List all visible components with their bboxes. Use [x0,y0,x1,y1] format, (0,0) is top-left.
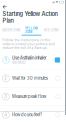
button[interactable]: GREEN ZONE [1,28,21,34]
staticText: 3 [4,94,7,99]
staticText: Starting Yellow Action Plan [2,11,57,24]
button[interactable]: RED ZONE [41,28,61,34]
staticText: 1 [5,57,7,63]
button[interactable]: 1 [0,51,66,69]
button[interactable]: Back [0,4,10,9]
staticText: RED ZONE [44,28,59,32]
staticText: Follow the instructions in this order to… [2,38,54,50]
staticText: 2 [4,76,7,81]
staticText: YELLOW ZONE [25,27,38,34]
staticText: Use Asthalin inhaler [12,55,47,60]
button[interactable]: YELLOW ZONE [21,27,41,36]
staticText: 4 [4,112,7,117]
staticText: Measure peak flow [12,94,46,99]
staticText: 100 MCG [12,61,25,64]
button[interactable]: 3 [0,88,66,106]
staticText: GREEN ZONE [2,28,21,32]
staticText: How do you feel? [12,112,42,117]
staticText: Wait for 30 minutes [12,76,48,81]
button[interactable]: 2 [0,69,66,87]
button[interactable]: 4 [0,106,66,124]
